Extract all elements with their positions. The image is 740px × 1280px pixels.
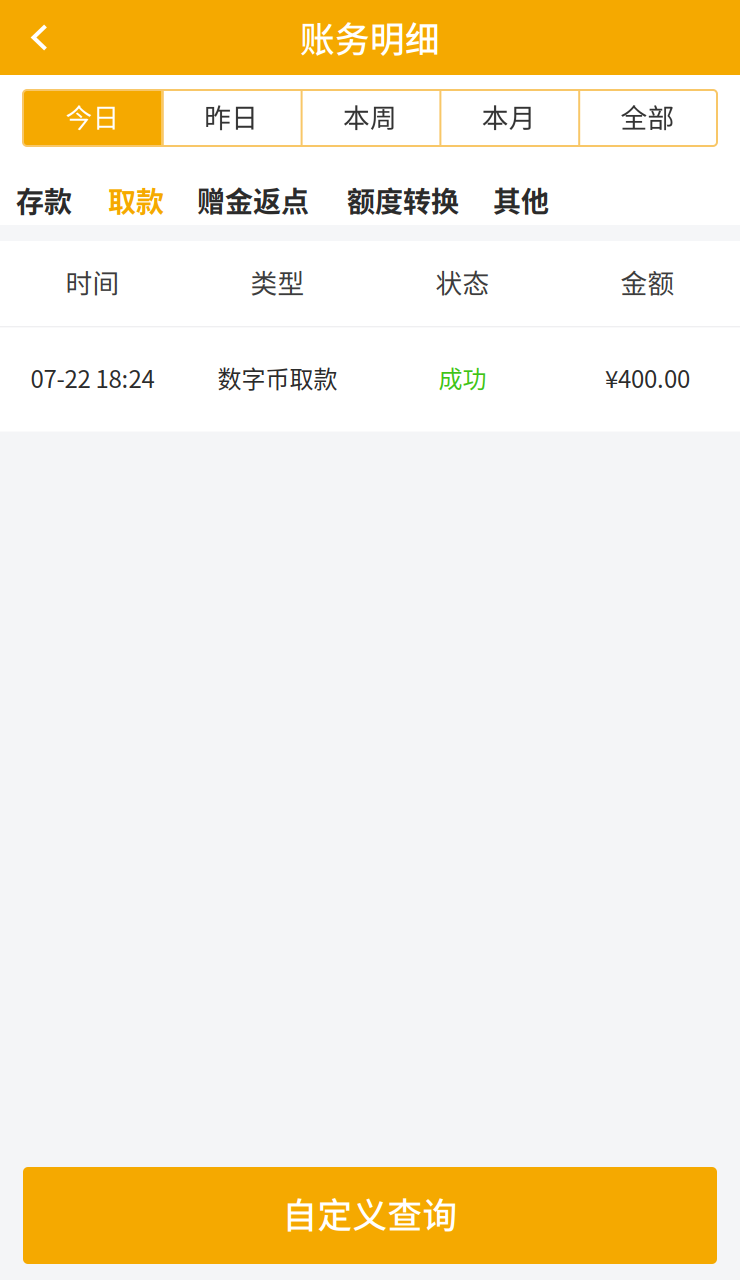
staticText: 成功 [438,360,486,395]
staticText: 其他 [493,180,549,220]
button[interactable]: 赠金返点 [197,186,309,214]
button[interactable]: 今日 [23,90,162,146]
button[interactable]: 本月 [439,90,578,146]
staticText: 数字币取款 [217,360,337,395]
staticText: 07-22 18:24 [30,360,154,395]
staticText: ¥400.00 [605,360,690,395]
staticText: 取款 [108,180,164,220]
staticText: 状态 [435,262,489,301]
staticText: 时间 [65,262,119,301]
staticText: 今日 [65,97,119,135]
staticText: 金额 [620,262,674,301]
staticText: 账务明细 [300,12,440,63]
button[interactable]: 自定义查询 [23,1167,717,1264]
staticText: 存款 [16,180,72,220]
staticText: 类型 [250,262,304,301]
staticText: 本周 [343,97,397,135]
staticText: 赠金返点 [197,180,309,220]
button[interactable]: 其他 [493,186,549,214]
button[interactable]: 本周 [301,90,439,146]
staticText: 昨日 [204,97,258,135]
staticText: 额度转换 [347,180,459,220]
staticText: 本月 [482,97,536,135]
button[interactable]: Back [0,0,62,75]
button[interactable]: 07-22 18:24 [0,327,740,431]
staticText: 全部 [621,97,675,135]
button[interactable]: 昨日 [162,90,301,146]
button[interactable]: 额度转换 [347,186,459,214]
button[interactable]: 存款 [16,186,72,214]
staticText: 自定义查询 [282,1188,457,1239]
button[interactable]: 全部 [578,90,717,146]
button[interactable]: 取款 [108,186,164,214]
